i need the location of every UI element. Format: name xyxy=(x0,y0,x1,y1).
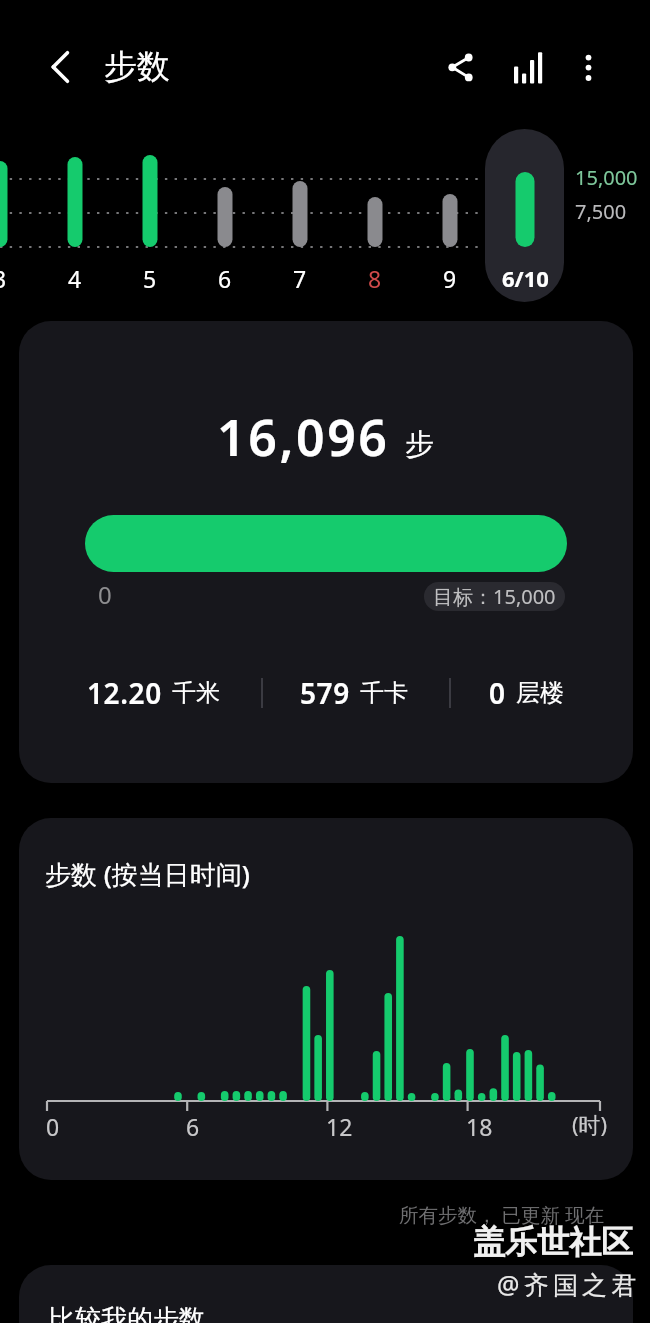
button[interactable]: 8 xyxy=(335,259,415,297)
button[interactable]: 0 xyxy=(416,670,633,716)
button[interactable]: 6 xyxy=(186,1110,234,1142)
staticText: 千米 xyxy=(172,678,220,708)
staticText: 16,096 xyxy=(217,403,390,471)
button[interactable]: 12 xyxy=(326,1110,374,1142)
staticText: 12.20 xyxy=(87,674,162,712)
staticText: 比较我的步数 xyxy=(49,1303,205,1323)
staticText: 0 xyxy=(98,578,112,611)
button[interactable]: 9 xyxy=(410,259,490,297)
staticText: 步数 (按当日时间) xyxy=(45,856,250,892)
button[interactable]: 7 xyxy=(260,259,340,297)
staticText: 0 xyxy=(489,674,506,712)
button[interactable]: More options xyxy=(560,40,616,96)
staticText: 18 xyxy=(466,1111,493,1142)
button[interactable]: 0 xyxy=(46,1110,94,1142)
staticText: 0 xyxy=(46,1111,60,1142)
button[interactable]: 比较我的步数 xyxy=(19,1265,633,1323)
staticText: 7,500 xyxy=(575,198,627,225)
button[interactable]: 18 xyxy=(466,1110,514,1142)
staticText: 6 xyxy=(186,1111,200,1142)
staticText: 步数 xyxy=(104,46,170,88)
staticText: 15,000 xyxy=(575,164,638,191)
button[interactable]: Chart view xyxy=(500,40,556,96)
button[interactable]: 6/10 xyxy=(485,259,565,297)
button[interactable]: 12.20 xyxy=(43,670,263,716)
button[interactable]: 16,096 xyxy=(19,321,633,783)
button[interactable]: Share xyxy=(433,40,489,96)
button[interactable]: 目标：15,000 xyxy=(424,582,565,611)
staticText: 6 xyxy=(218,263,232,294)
button[interactable]: Back xyxy=(34,41,86,93)
staticText: 目标：15,000 xyxy=(433,583,556,610)
button[interactable]: 5 xyxy=(110,259,190,297)
staticText: 9 xyxy=(443,263,457,294)
staticText: 8 xyxy=(368,263,382,294)
staticText: 12 xyxy=(326,1111,353,1142)
staticText: 7 xyxy=(293,263,307,294)
button[interactable]: 579 xyxy=(244,670,464,716)
staticText: 所有步数， 已更新 现在 xyxy=(399,1201,605,1228)
staticText: 4 xyxy=(68,263,82,294)
staticText: 层楼 xyxy=(516,678,564,708)
staticText: 3 xyxy=(0,263,7,294)
staticText: 千卡 xyxy=(360,678,408,708)
staticText: @齐国之君 xyxy=(497,1267,641,1301)
button[interactable]: 6 xyxy=(185,259,265,297)
staticText: 盖乐世社区 xyxy=(473,1222,633,1262)
button[interactable]: 3 xyxy=(0,259,40,297)
button[interactable]: 步数 xyxy=(104,41,170,93)
staticText: 6/10 xyxy=(502,263,549,293)
staticText: (时) xyxy=(572,1109,608,1139)
button[interactable]: 步数 (按当日时间) xyxy=(19,818,633,1180)
button[interactable]: 4 xyxy=(35,259,115,297)
staticText: 579 xyxy=(300,674,350,712)
staticText: 步 xyxy=(405,426,434,463)
staticText: 5 xyxy=(143,263,157,294)
